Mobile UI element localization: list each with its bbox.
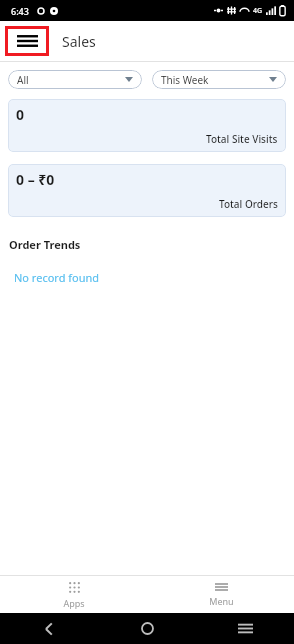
- staticText: Menu: [209, 595, 234, 607]
- button[interactable]: Home: [98, 613, 196, 644]
- staticText: This Week: [161, 73, 209, 87]
- button[interactable]: Apps: [39, 578, 109, 612]
- staticText: 4G: [253, 6, 263, 16]
- button[interactable]: Recent apps: [196, 613, 294, 644]
- button[interactable]: Back: [0, 613, 98, 644]
- button[interactable]: All: [8, 70, 142, 89]
- button[interactable]: 0: [8, 99, 286, 152]
- staticText: All: [17, 73, 29, 87]
- staticText: Sales: [62, 32, 96, 51]
- button[interactable]: This Week: [152, 70, 286, 89]
- button[interactable]: Menu: [186, 579, 256, 610]
- staticText: 0: [16, 105, 25, 124]
- staticText: Total Site Visits: [206, 132, 278, 146]
- staticText: Total Orders: [219, 197, 278, 211]
- staticText: Order Trends: [9, 237, 81, 252]
- button[interactable]: 0 – ₹0: [8, 164, 286, 217]
- staticText: No record found: [14, 270, 100, 285]
- staticText: 6:43: [11, 5, 29, 17]
- staticText: 0 – ₹0: [16, 170, 55, 189]
- button[interactable]: Open navigation menu: [5, 26, 49, 56]
- staticText: Apps: [63, 597, 85, 609]
